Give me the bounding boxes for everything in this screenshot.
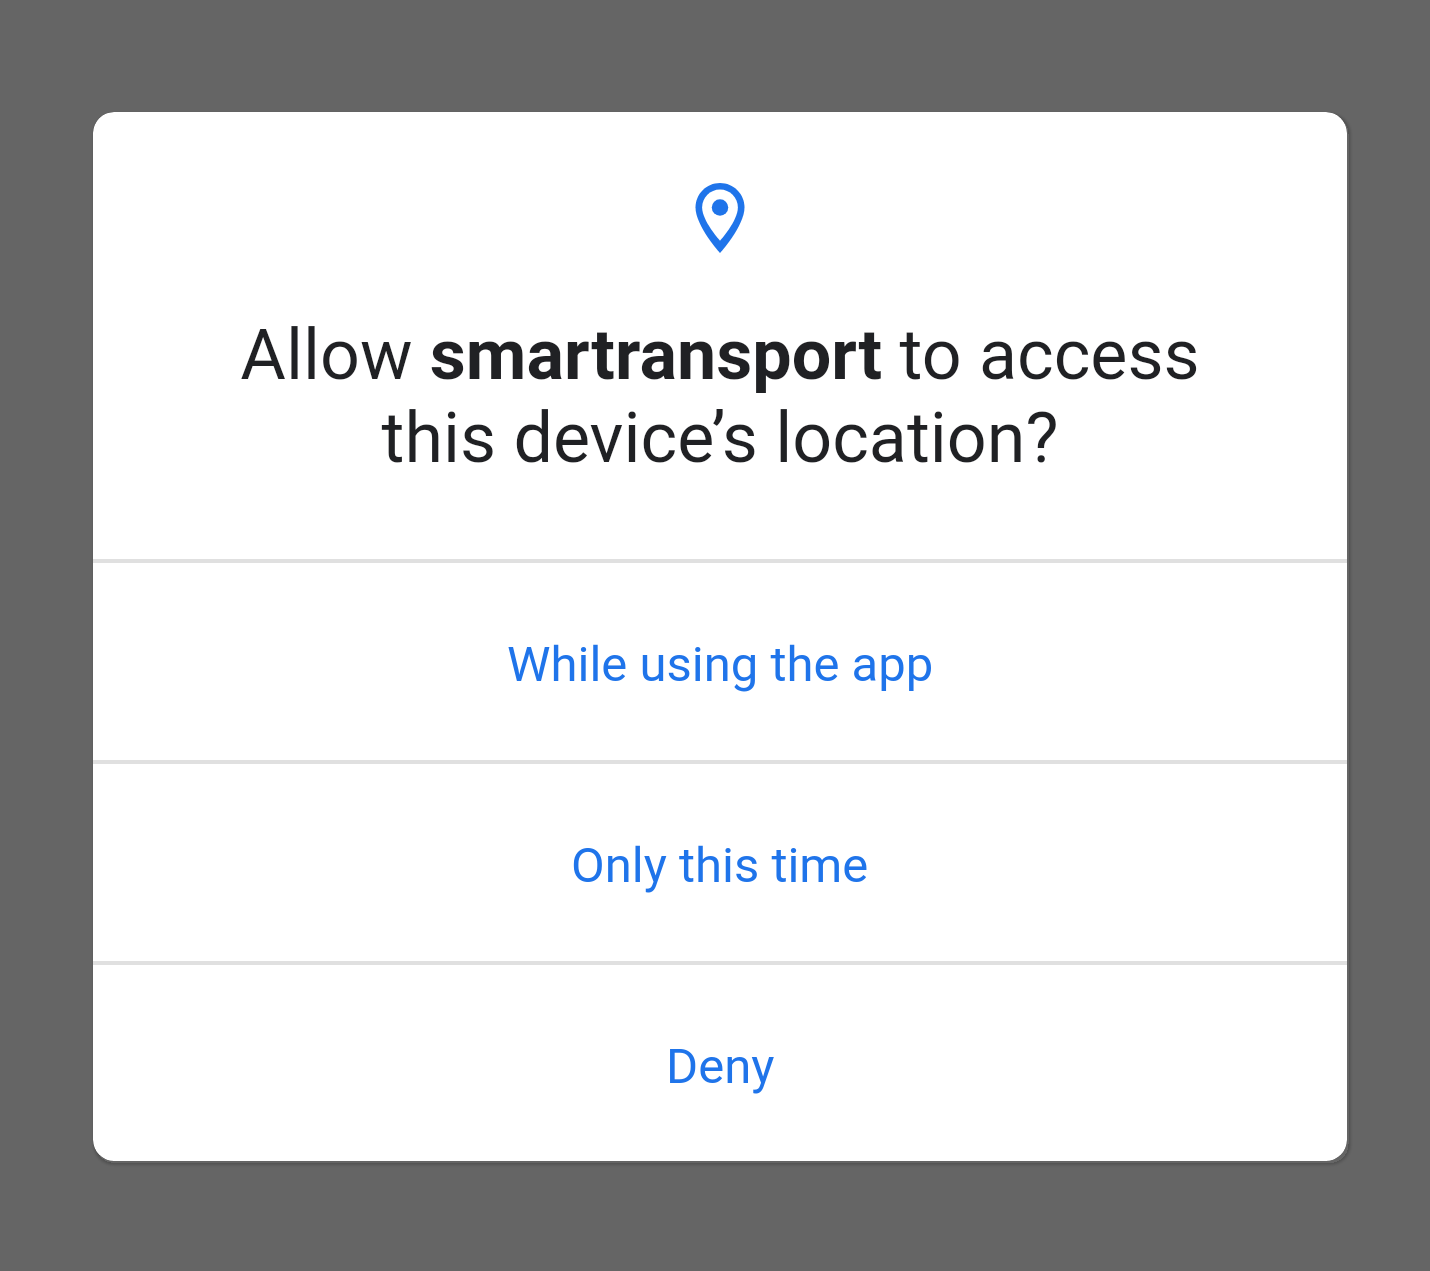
staticText: Only this time (571, 837, 869, 894)
button[interactable]: While using the app (93, 563, 1347, 760)
staticText: While using the app (507, 636, 934, 693)
button[interactable]: Deny (93, 965, 1347, 1161)
staticText: Deny (666, 1038, 775, 1095)
button[interactable]: Only this time (93, 764, 1347, 961)
staticText: Allow smartransport to access this devic… (93, 314, 1347, 479)
